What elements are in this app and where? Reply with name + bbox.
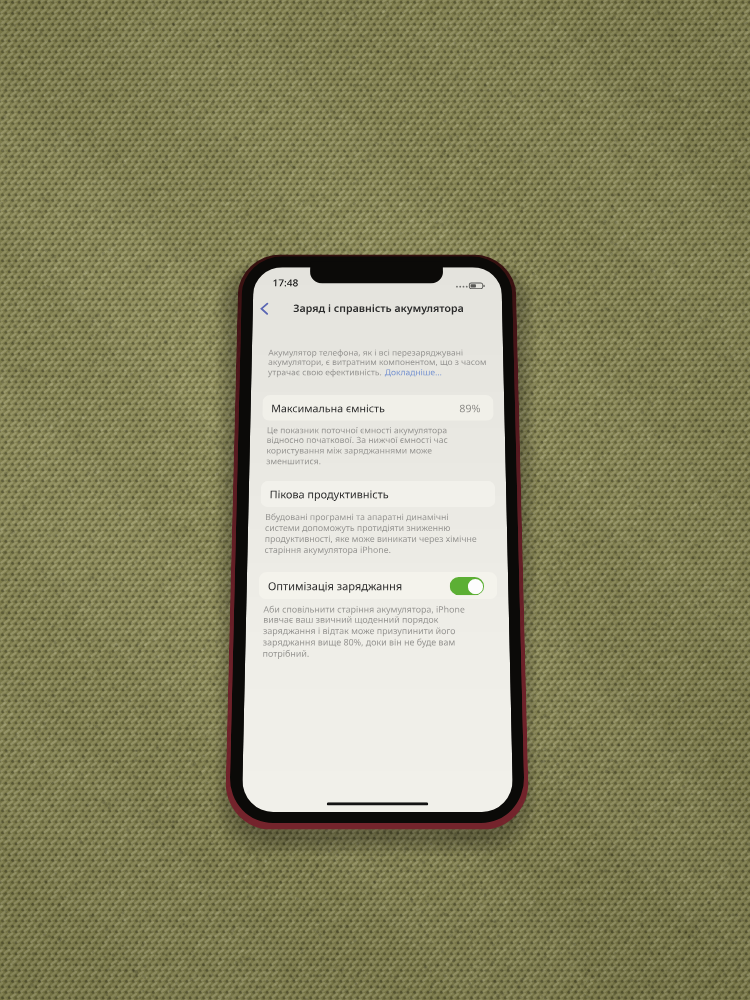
staticText: Оптимізація заряджання — [268, 578, 402, 593]
staticText: Вбудовані програмні та апаратні динамічн… — [265, 511, 449, 523]
staticText: продуктивності, яке може виникати через … — [265, 533, 477, 545]
staticText: заряджання вище 80%, доки він не буде ва… — [263, 636, 456, 649]
staticText: користування між заряджаннями може — [266, 445, 432, 456]
staticText: відносно початкової. За нижчої ємності ч… — [267, 434, 448, 446]
button[interactable]: Пікова продуктивність — [260, 481, 496, 507]
button[interactable]: Оптимізація заряджання — [259, 572, 497, 599]
button[interactable]: Докладніше... — [385, 367, 442, 378]
staticText: акумулятори, є витратним компонентом, що… — [268, 356, 487, 368]
staticText: 89% — [459, 401, 481, 415]
button[interactable]: Optimized battery charging toggle — [450, 577, 484, 595]
staticText: Аби сповільнити старіння акумулятора, iP… — [263, 603, 465, 616]
staticText: заряджання і відтак може призупинити йог… — [263, 625, 456, 637]
staticText: Максимальна ємність — [271, 401, 386, 415]
staticText: Акумулятор телефона, як і всі перезарядж… — [268, 347, 463, 358]
staticText: зменшитися. — [266, 455, 322, 467]
staticText: Це показник поточної ємності акумулятора — [267, 425, 448, 436]
staticText: Пікова продуктивність — [269, 487, 389, 501]
button[interactable]: Максимальна ємність — [262, 395, 494, 421]
staticText: вивчає ваш звичний щоденний порядок — [263, 614, 439, 626]
button[interactable]: Back — [253, 295, 280, 321]
staticText: старіння акумулятора iPhone. — [264, 544, 391, 556]
staticText: утрачає свою ефективність. — [268, 367, 385, 378]
staticText: 17:48 — [272, 276, 298, 289]
staticText: потрібний. — [262, 647, 310, 660]
staticText: системи допоможуть протидіяти зниженню — [265, 522, 451, 534]
staticText: Заряд і справність акумулятора — [293, 301, 465, 315]
